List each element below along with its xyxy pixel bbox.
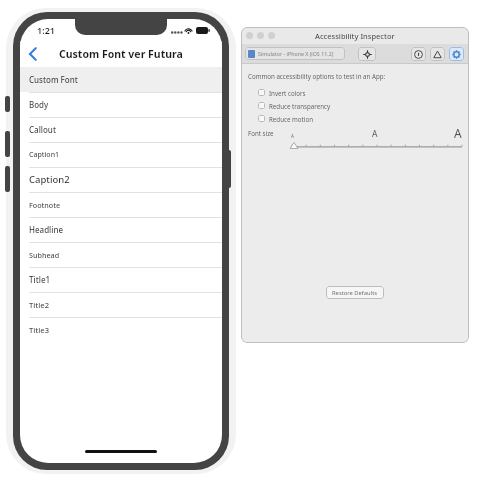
button[interactable]: Restore Defaults [326,286,384,299]
staticText: Simulator - iPhone X (iOS 11.2) [258,50,334,57]
staticText: A [454,125,462,141]
button[interactable]: Reduce transparency [241,99,469,112]
button[interactable]: Back [20,41,46,67]
staticText: A [291,133,294,139]
button[interactable]: Caption1 [20,142,222,167]
button[interactable]: Invert colors [241,86,469,99]
button[interactable]: Body [20,92,222,117]
staticText: Title1 [29,274,51,285]
staticText: Title3 [29,325,49,335]
staticText: Body [29,99,49,110]
button[interactable]: Font size slider [292,142,462,150]
button[interactable]: Reduce motion [241,112,469,125]
staticText: Invert colors [269,89,306,97]
staticText: Font size [248,129,274,137]
staticText: Subhead [29,250,60,260]
staticText: Restore Defaults [332,289,378,297]
staticText: Headline [29,224,64,235]
button[interactable]: Window control [268,32,275,39]
button[interactable]: Custom Font [20,67,222,92]
button[interactable]: Window control [257,32,264,39]
staticText: A [372,128,378,140]
staticText: Caption2 [29,173,70,186]
staticText: Accessibility Inspector [315,31,395,41]
button[interactable]: Inspection [411,47,426,61]
button[interactable]: Title1 [20,267,222,292]
button[interactable]: Window control [246,32,253,39]
staticText: Caption1 [29,150,60,160]
button[interactable]: Settings [449,47,464,61]
staticText: Callout [29,124,56,135]
button[interactable]: Title3 [20,317,222,342]
staticText: Title2 [29,300,49,310]
button[interactable]: Subhead [20,242,222,267]
button[interactable]: Audit [430,47,445,61]
button[interactable]: Simulator - iPhone X (iOS 11.2) [245,47,345,60]
button[interactable]: Title2 [20,292,222,317]
button[interactable]: Caption2 [20,167,222,192]
staticText: Footnote [29,200,61,210]
staticText: 1:21 [37,24,55,36]
button[interactable]: Callout [20,117,222,142]
button[interactable]: Inspection pointer [358,47,376,61]
button[interactable]: Headline [20,217,222,242]
staticText: Reduce motion [269,115,313,123]
staticText: Custom Font ver Futura [59,47,183,61]
staticText: Reduce transparency [269,102,331,110]
staticText: Custom Font [29,74,78,85]
button[interactable]: Footnote [20,192,222,217]
staticText: Common accessibility options to test in … [248,72,386,80]
